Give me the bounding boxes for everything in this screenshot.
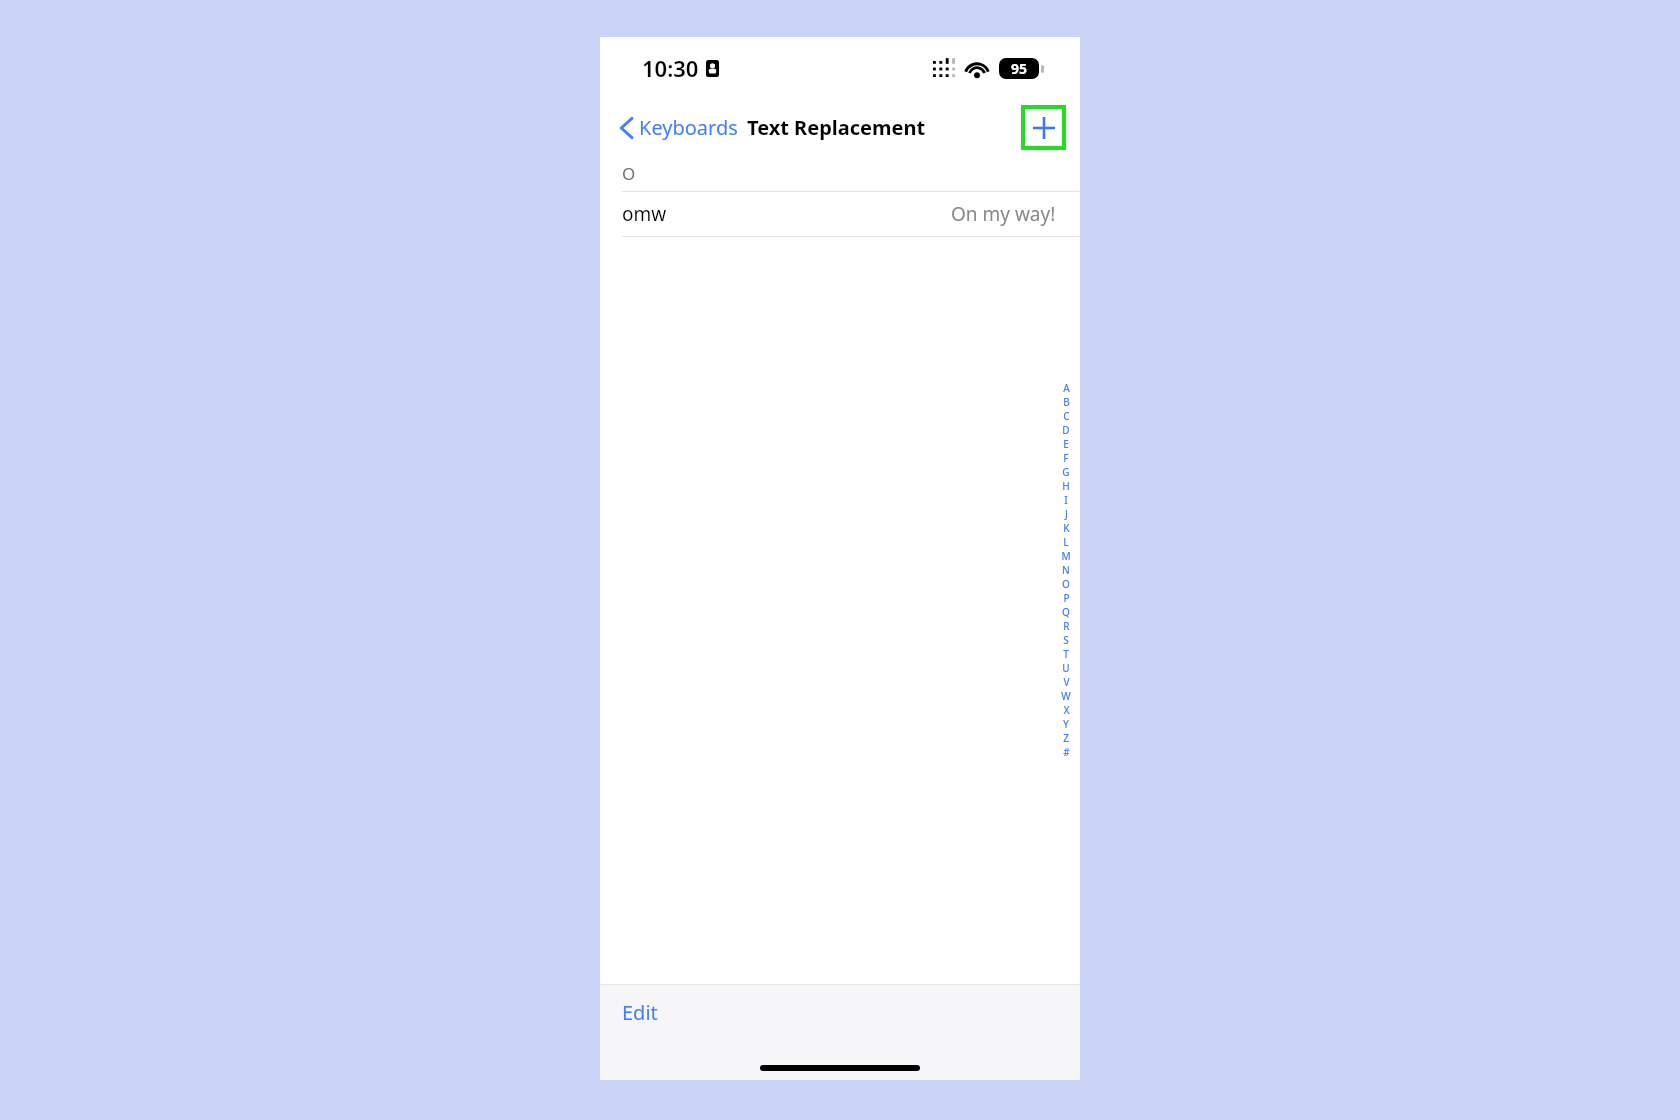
button[interactable]: Edit [612, 991, 668, 1034]
staticText: On my way! [951, 201, 1056, 227]
staticText: B [1063, 395, 1070, 409]
staticText: Text Replacement [747, 114, 926, 141]
staticText: Keyboards [639, 114, 738, 141]
button[interactable]: omw [600, 192, 1080, 236]
staticText: O [1062, 577, 1070, 591]
staticText: C [1063, 409, 1070, 423]
staticText: I [1064, 493, 1068, 507]
staticText: S [1063, 633, 1069, 647]
staticText: E [1063, 437, 1069, 451]
staticText: Q [1062, 605, 1070, 619]
staticText: F [1063, 451, 1069, 465]
staticText: L [1063, 535, 1069, 549]
button[interactable]: Section index [1058, 381, 1074, 759]
staticText: M [1061, 549, 1071, 563]
staticText: K [1063, 521, 1070, 535]
staticText: P [1063, 591, 1070, 605]
staticText: A [1063, 381, 1070, 395]
staticText: N [1062, 563, 1070, 577]
staticText: G [1062, 465, 1070, 479]
staticText: H [1062, 479, 1070, 493]
staticText: O [622, 162, 636, 185]
staticText: T [1063, 647, 1069, 661]
staticText: W [1061, 689, 1071, 703]
staticText: Y [1063, 717, 1069, 731]
staticText: D [1062, 423, 1070, 437]
staticText: J [1065, 507, 1068, 521]
staticText: U [1062, 661, 1070, 675]
staticText: 10:30 [642, 53, 699, 83]
staticText: Z [1063, 731, 1069, 745]
staticText: omw [622, 201, 667, 227]
staticText: 95 [1011, 59, 1028, 78]
staticText: R [1063, 619, 1070, 633]
staticText: X [1063, 703, 1070, 717]
staticText: # [1063, 745, 1070, 759]
button[interactable]: Add text replacement [1021, 105, 1066, 150]
button[interactable]: Keyboards [614, 108, 744, 147]
staticText: V [1063, 675, 1070, 689]
staticText: Edit [622, 999, 658, 1026]
